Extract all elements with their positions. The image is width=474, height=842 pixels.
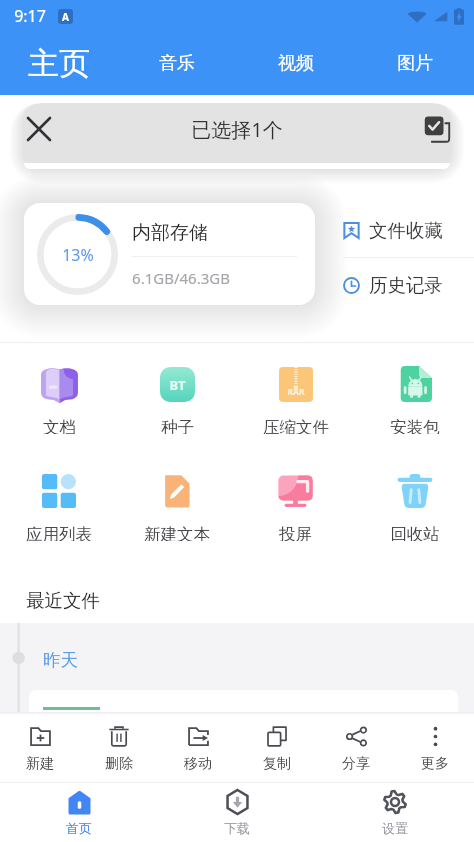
staticText: 9:17 — [14, 5, 46, 27]
staticText: 应用列表 — [26, 524, 92, 541]
staticText: 主页 — [28, 44, 90, 83]
button[interactable]: 删除 — [79, 715, 158, 782]
staticText: 删除 — [105, 755, 133, 773]
button[interactable]: 回收站 — [355, 471, 474, 541]
button[interactable]: 移动 — [158, 715, 237, 782]
staticText: 设置 — [382, 820, 408, 836]
staticText: 历史记录 — [369, 274, 443, 297]
button[interactable]: 新建 — [0, 715, 79, 782]
button[interactable]: 图片 — [355, 32, 474, 95]
staticText: 压缩文件 — [263, 417, 329, 434]
button[interactable]: 音乐 — [118, 32, 236, 95]
button[interactable]: Select all — [416, 108, 458, 150]
staticText: 首页 — [66, 820, 92, 836]
staticText: 下载 — [224, 820, 250, 836]
button[interactable]: 应用列表 — [0, 471, 118, 541]
staticText: 分享 — [342, 755, 370, 773]
staticText: 内部存储 — [132, 221, 208, 245]
button[interactable]: 主页 — [0, 32, 118, 95]
staticText: 文档 — [43, 417, 76, 434]
button[interactable]: 复制 — [237, 715, 316, 782]
staticText: 6.1GB/46.3GB — [132, 268, 230, 288]
button[interactable]: 更多 — [395, 715, 474, 782]
staticText: 已选择1个 — [191, 116, 283, 143]
staticText: 文件收藏 — [369, 219, 443, 242]
staticText: 更多 — [421, 755, 449, 773]
staticText: 新建 — [26, 755, 54, 773]
staticText: 复制 — [263, 755, 291, 773]
button[interactable]: 历史记录 — [343, 258, 474, 312]
staticText: 投屏 — [279, 524, 312, 541]
staticText: 图片 — [397, 52, 433, 75]
staticText: 新建文本 — [144, 524, 210, 541]
button[interactable]: RAR — [236, 364, 355, 434]
staticText: 种子 — [161, 417, 194, 434]
button[interactable]: BT — [118, 364, 236, 434]
button[interactable]: 下载 — [158, 783, 316, 842]
button[interactable]: 文档 — [0, 364, 118, 434]
staticText: A — [62, 10, 69, 24]
button[interactable]: 新建文本 — [118, 471, 236, 541]
button[interactable]: 安装包 — [355, 364, 474, 434]
staticText: 最近文件 — [26, 589, 100, 612]
staticText: 音乐 — [159, 52, 195, 75]
button[interactable]: Close — [18, 108, 60, 150]
button[interactable]: 13% — [24, 203, 315, 305]
button[interactable]: 投屏 — [236, 471, 355, 541]
button[interactable]: 设置 — [316, 783, 474, 842]
button[interactable]: 分享 — [316, 715, 395, 782]
staticText: 回收站 — [390, 524, 440, 541]
button[interactable]: 文件收藏 — [343, 204, 474, 257]
staticText: 移动 — [184, 755, 212, 773]
staticText: RAR — [287, 386, 305, 398]
staticText: 昨天 — [43, 649, 78, 671]
staticText: BT — [169, 376, 186, 394]
staticText: 安装包 — [390, 417, 440, 434]
staticText: 视频 — [278, 52, 314, 75]
staticText: 13% — [62, 244, 94, 266]
button[interactable]: 视频 — [236, 32, 355, 95]
button[interactable]: 首页 — [0, 783, 158, 842]
